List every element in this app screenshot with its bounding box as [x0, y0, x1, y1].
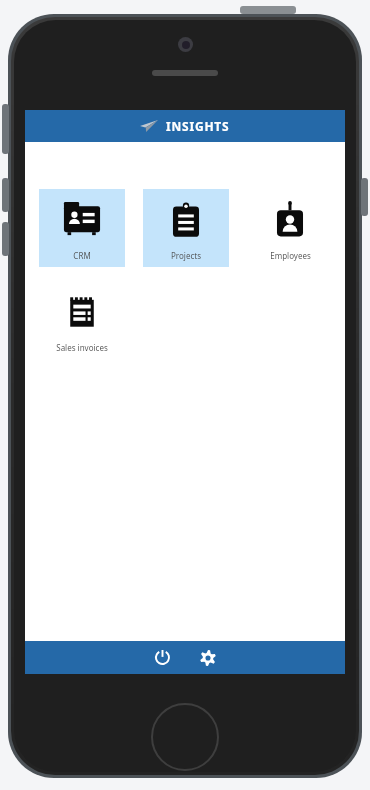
button[interactable]: Projects — [143, 189, 229, 267]
staticText: Employees — [270, 250, 311, 261]
button[interactable]: Settings — [191, 641, 225, 674]
staticText: Sales invoices — [56, 342, 108, 353]
button[interactable]: Power — [145, 641, 179, 674]
button[interactable]: CRM — [39, 189, 125, 267]
staticText: Projects — [171, 250, 201, 261]
staticText: CRM — [73, 250, 91, 261]
staticText: INSIGHTS — [166, 118, 230, 134]
button[interactable]: Employees — [247, 189, 333, 267]
button[interactable]: Sales invoices — [39, 281, 125, 359]
button[interactable]: INSIGHTS — [25, 110, 345, 142]
